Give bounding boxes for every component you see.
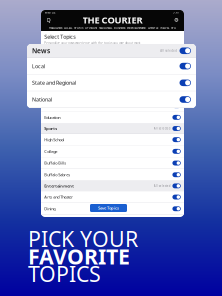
staticText: Select all that apply — change them anyt… [44,46,121,50]
staticText: 9:41 [173,11,180,14]
staticText: TOPICS [28,260,101,288]
button[interactable]: News [27,44,196,58]
staticText: High School [44,137,64,142]
staticText: HEADLINES LOCAL SPORTS OPINION NATIONAL … [49,26,176,30]
staticText: Local [44,80,53,85]
staticText: Buffalo Bills [44,160,66,166]
staticText: All selected [154,127,171,130]
staticText: Local [32,63,45,70]
staticText: Q [46,16,50,24]
button[interactable]: Search [45,16,52,23]
staticText: FAVORITE [28,242,130,270]
button[interactable]: Save Topics [90,204,127,212]
button[interactable]: National [41,100,184,112]
button[interactable]: Local [27,58,196,75]
button[interactable]: State and Regional [41,88,184,100]
button[interactable]: Sports [41,123,184,134]
staticText: College [44,149,57,154]
staticText: Buffalo Sabres [44,172,70,177]
staticText: Sports [44,126,57,131]
staticText: THE COURIER [82,14,142,26]
button[interactable]: State and Regional [27,75,196,91]
staticText: Arts and Theater [44,194,73,200]
staticText: AT&T LTE [45,11,55,14]
staticText: Education [44,115,60,120]
staticText: ⚙ [174,17,179,23]
button[interactable]: Dining [41,203,184,215]
staticText: PICK YOUR [28,225,138,253]
button[interactable]: News [41,66,184,77]
staticText: Entertainment [44,183,74,188]
button[interactable]: Arts and Theater [41,191,184,203]
staticText: Personalize your news experience with th… [44,41,141,45]
button[interactable]: Entertainment [41,181,184,191]
button[interactable]: Education [41,112,184,123]
button[interactable]: Buffalo Bills [41,157,184,169]
staticText: News [32,46,50,55]
button[interactable]: Buffalo Sabres [41,169,184,181]
staticText: Select Topics [44,33,76,40]
button[interactable]: Local [41,77,184,88]
staticText: All selected [154,184,171,188]
staticText: National [32,96,52,103]
button[interactable]: National [27,91,196,108]
staticText: All selected [160,49,177,52]
button[interactable]: Settings [173,16,180,23]
staticText: Dining [44,206,55,211]
staticText: Save Topics [98,205,119,211]
button[interactable]: College [41,146,184,157]
staticText: State and Regional [32,79,76,86]
staticText: National [44,103,58,108]
button[interactable]: High School [41,134,184,146]
staticText: News [44,68,54,74]
